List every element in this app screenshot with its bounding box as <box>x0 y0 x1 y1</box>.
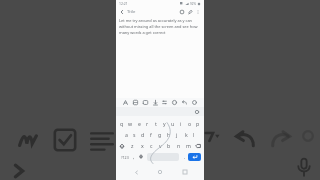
button[interactable]: h <box>165 129 173 140</box>
staticText: 12:21 <box>119 1 128 6</box>
staticText: , <box>133 154 135 161</box>
button[interactable]: Reminder <box>178 8 186 16</box>
button[interactable]: Recents <box>180 167 190 177</box>
staticText: g <box>158 131 162 138</box>
button[interactable]: Comma <box>130 153 137 161</box>
button[interactable]: s <box>130 129 138 140</box>
button[interactable]: Keyboard tool 2 <box>141 98 150 107</box>
button[interactable]: m <box>184 140 192 151</box>
button[interactable]: p <box>194 118 202 129</box>
staticText: h <box>167 131 171 138</box>
button[interactable]: d <box>139 129 147 140</box>
button[interactable]: t <box>152 118 160 129</box>
button[interactable]: q <box>118 118 126 129</box>
button[interactable]: Keyboard tool 1 <box>131 98 140 107</box>
staticText: many words a get correct <box>119 30 166 35</box>
staticText: . <box>184 154 186 161</box>
staticText: a <box>125 131 128 138</box>
button[interactable]: Keyboard tool 3 <box>151 98 160 107</box>
button[interactable]: Space <box>147 153 179 161</box>
staticText: 92% <box>190 2 196 6</box>
staticText: y <box>163 120 166 127</box>
staticText: v <box>159 142 162 149</box>
staticText: z <box>131 142 134 149</box>
staticText: d <box>141 131 145 138</box>
button[interactable]: c <box>147 140 155 151</box>
button[interactable]: y <box>160 118 168 129</box>
button[interactable]: Keyboard tool 6 <box>180 98 189 107</box>
staticText: n <box>177 142 181 149</box>
button[interactable]: j <box>173 129 181 140</box>
button[interactable]: e <box>135 118 143 129</box>
button[interactable]: x <box>138 140 146 151</box>
button[interactable]: Keyboard tool 4 <box>160 98 169 107</box>
staticText: ?123 <box>121 155 129 160</box>
staticText: j <box>176 131 178 138</box>
button[interactable]: z <box>128 140 136 151</box>
button[interactable]: v <box>156 140 164 151</box>
staticText: q <box>120 120 124 127</box>
button[interactable]: r <box>143 118 151 129</box>
button[interactable]: ?123 <box>119 153 130 161</box>
button[interactable]: l <box>190 129 198 140</box>
button[interactable]: f <box>147 129 155 140</box>
button[interactable]: u <box>169 118 177 129</box>
staticText: k <box>185 131 188 138</box>
button[interactable]: k <box>182 129 190 140</box>
staticText: w <box>128 120 133 127</box>
staticText: Let me try around as accurately as y can <box>119 18 192 23</box>
staticText: Title <box>127 9 136 15</box>
button[interactable]: Keyboard tool 5 <box>170 98 179 107</box>
button[interactable]: Keyboard tool 0 <box>121 98 130 107</box>
button[interactable]: Period <box>181 153 188 161</box>
button[interactable]: o <box>186 118 194 129</box>
button[interactable]: a <box>122 129 130 140</box>
staticText: p <box>196 120 200 127</box>
button[interactable]: Back <box>131 167 141 177</box>
staticText: r <box>146 120 149 127</box>
staticText: x <box>141 142 144 149</box>
staticText: l <box>193 131 195 138</box>
button[interactable]: Back <box>118 8 126 16</box>
button[interactable]: Voice input <box>137 153 145 161</box>
staticText: e <box>138 120 141 127</box>
staticText: o <box>188 120 192 127</box>
button[interactable]: Keyboard tool 7 <box>190 98 199 107</box>
staticText: u <box>171 120 175 127</box>
button[interactable]: g <box>156 129 164 140</box>
button[interactable]: i <box>177 118 185 129</box>
button[interactable]: Shift <box>117 140 127 151</box>
button[interactable]: Enter <box>188 153 201 161</box>
staticText: b <box>167 142 171 149</box>
button[interactable]: b <box>165 140 173 151</box>
button[interactable]: Home <box>155 167 165 177</box>
button[interactable]: Expand suggestions <box>194 109 200 115</box>
staticText: s <box>133 131 136 138</box>
button[interactable]: Backspace <box>193 140 203 151</box>
button[interactable]: n <box>175 140 183 151</box>
button[interactable]: More options <box>194 8 202 16</box>
button[interactable]: w <box>126 118 134 129</box>
staticText: t <box>155 120 157 127</box>
staticText: m <box>186 142 191 149</box>
staticText: c <box>150 142 153 149</box>
button[interactable]: Pin <box>186 8 194 16</box>
staticText: i <box>180 120 182 127</box>
staticText: f <box>150 131 152 138</box>
staticText: without missing all the screen and see h… <box>119 24 198 29</box>
